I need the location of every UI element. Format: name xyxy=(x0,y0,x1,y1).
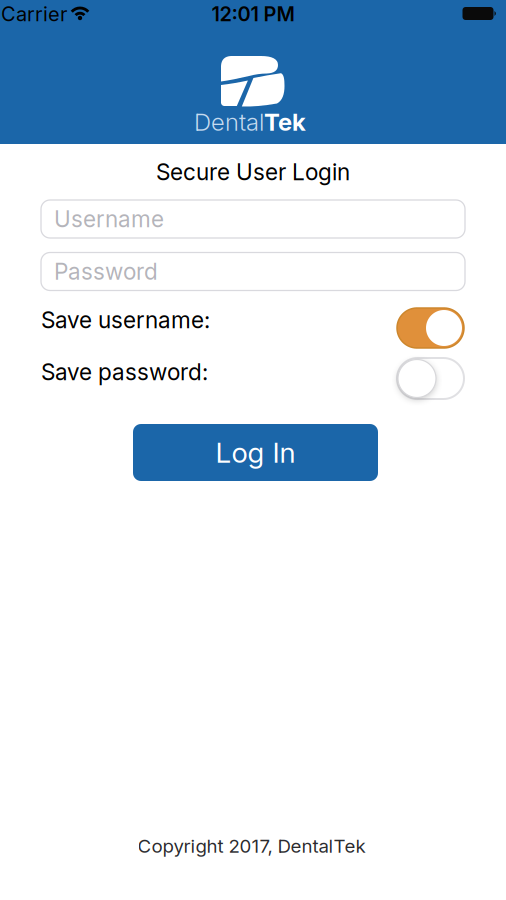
staticText: Save username: xyxy=(41,307,210,333)
staticText: Copyright 2017, DentalTek xyxy=(137,835,365,857)
staticText: Password xyxy=(54,258,158,285)
staticText: Dental xyxy=(194,108,264,136)
staticText: Username xyxy=(54,206,164,232)
staticText: 12:01 PM xyxy=(211,2,294,26)
staticText: Save password: xyxy=(41,359,208,385)
button[interactable]: Username xyxy=(41,200,465,238)
staticText: Log In xyxy=(215,436,295,469)
button[interactable]: Log In xyxy=(133,424,378,481)
staticText: Secure User Login xyxy=(156,159,350,185)
staticText: Carrier xyxy=(1,2,67,26)
button[interactable]: Save password xyxy=(397,358,464,399)
staticText: Tek xyxy=(264,108,306,136)
button[interactable]: Password xyxy=(41,252,465,290)
button[interactable]: Save username xyxy=(397,308,464,348)
